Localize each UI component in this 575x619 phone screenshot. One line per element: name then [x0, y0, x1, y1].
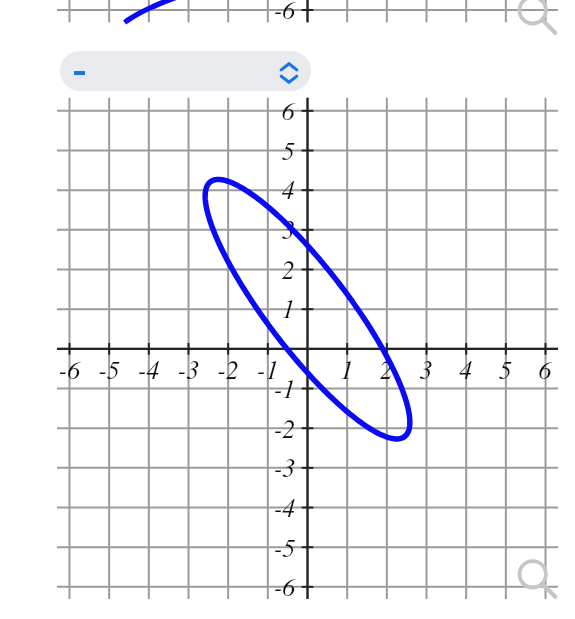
button[interactable]: Expand expression: [60, 51, 311, 91]
other: Expand expression: [276, 61, 302, 85]
